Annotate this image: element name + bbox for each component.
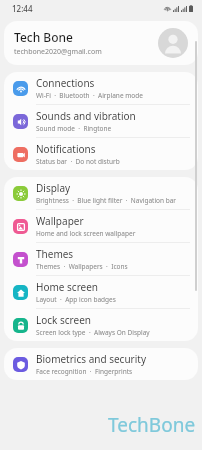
staticText: Wi-Fi · Bluetooth · Airplane mode [36,91,143,100]
staticText: Face recognition · Fingerprints [36,367,133,376]
staticText: Connections [36,76,95,90]
button[interactable]: Search [172,19,194,41]
button[interactable]: Sounds and vibration [4,105,198,137]
staticText: Home and lock screen wallpaper [36,229,136,238]
staticText: Wallpaper [36,214,84,228]
staticText: Themes · Wallpapers · Icons [36,262,128,271]
staticText: Sounds and vibration [36,109,136,123]
staticText: 12:44 [12,3,33,14]
staticText: TechBone [108,412,196,438]
button[interactable]: Lock screen [4,309,198,341]
button[interactable]: Display [4,177,198,209]
button[interactable]: Tech Bone [4,21,198,65]
button[interactable]: Connections [4,72,198,104]
staticText: Lock screen [36,313,92,327]
button[interactable]: Wallpaper [4,210,198,242]
staticText: Layout · App icon badges [36,295,116,304]
button[interactable]: Themes [4,243,198,275]
button[interactable]: Biometrics and security [4,348,198,380]
staticText: Settings [12,22,58,38]
staticText: techbone2020@gmail.com [14,47,102,57]
staticText: Home screen [36,280,99,294]
button[interactable]: Notifications [4,138,198,170]
staticText: Themes [36,247,74,261]
staticText: Notifications [36,142,96,156]
staticText: Status bar · Do not disturb [36,157,120,166]
staticText: Screen lock type · Always On Display [36,328,150,337]
staticText: Display [36,181,71,195]
staticText: Sound mode · Ringtone [36,124,112,133]
button[interactable]: Home screen [4,276,198,308]
staticText: Brightness · Blue light filter · Navigat… [36,196,177,205]
staticText: Tech Bone [14,29,73,45]
staticText: Biometrics and security [36,352,146,366]
